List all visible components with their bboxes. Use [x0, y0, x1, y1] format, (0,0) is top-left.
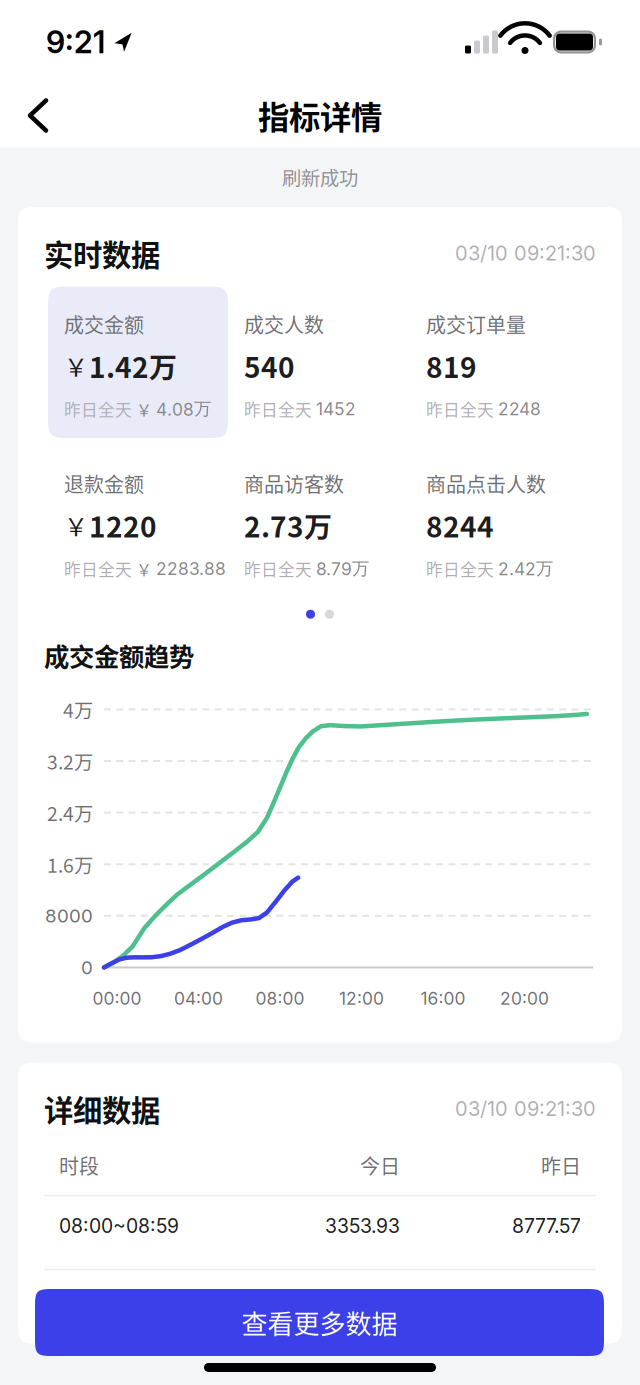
staticText: 2.42万: [498, 558, 553, 580]
staticText: 8.79万: [316, 558, 369, 580]
staticText: 成交金额: [64, 309, 144, 338]
staticText: 2.4万: [47, 799, 93, 827]
staticText: 商品点击人数: [426, 469, 546, 498]
staticText: 00:00: [92, 988, 141, 1009]
staticText: 昨日全天: [64, 397, 132, 421]
staticText: 1.6万: [47, 850, 93, 878]
staticText: 1452: [316, 399, 356, 420]
staticText: 12:00: [339, 988, 384, 1009]
staticText: 3353.93: [325, 1214, 400, 1238]
staticText: 04:00: [174, 988, 223, 1009]
staticText: 08:00: [255, 988, 304, 1009]
staticText: 成交金额趋势: [44, 637, 194, 673]
staticText: 时段: [59, 1151, 99, 1180]
button[interactable]: 查看更多数据: [35, 1289, 604, 1356]
staticText: 700.00: [336, 1298, 400, 1322]
staticText: 3.2万: [47, 747, 93, 775]
staticText: 4.08万: [156, 398, 211, 420]
staticText: ￥: [136, 557, 152, 580]
staticText: 9:21: [46, 23, 105, 60]
staticText: 实时数据: [44, 232, 160, 274]
staticText: 16:00: [420, 988, 465, 1009]
staticText: 1220: [89, 505, 157, 546]
staticText: 成交人数: [244, 309, 324, 338]
staticText: 今日: [360, 1151, 400, 1180]
staticText: 昨日全天: [244, 397, 312, 421]
staticText: 4万: [63, 695, 93, 723]
staticText: 刷新成功: [282, 163, 358, 191]
staticText: 昨日全天: [426, 397, 494, 421]
staticText: 03/10 09:21:30: [455, 1097, 596, 1121]
staticText: 819: [426, 345, 477, 386]
staticText: 20:00: [500, 988, 549, 1009]
staticText: 昨日全天: [64, 557, 132, 581]
staticText: 08:00~08:59: [59, 1214, 179, 1238]
staticText: 8000: [45, 904, 93, 927]
staticText: 成交订单量: [426, 309, 526, 338]
staticText: 商品访客数: [244, 469, 344, 498]
staticText: 03/10 09:21:30: [455, 241, 596, 265]
staticText: ￥: [64, 348, 88, 383]
button[interactable]: Back: [0, 86, 70, 144]
staticText: 8244: [426, 505, 494, 546]
staticText: 昨日: [541, 1151, 581, 1180]
staticText: ￥: [136, 397, 152, 421]
staticText: 查看更多数据: [241, 1304, 397, 1341]
staticText: 2.73万: [244, 505, 332, 546]
staticText: 昨日全天: [426, 557, 494, 581]
staticText: 0: [81, 956, 93, 979]
staticText: 昨日全天: [244, 557, 312, 581]
staticText: ￥: [64, 508, 88, 543]
staticText: 1.42万: [89, 345, 177, 386]
staticText: 指标详情: [258, 93, 382, 138]
staticText: 2248: [498, 399, 541, 420]
staticText: 540: [244, 345, 295, 386]
staticText: 2283.88: [156, 558, 226, 579]
staticText: 退款金额: [64, 469, 144, 498]
staticText: 详细数据: [44, 1087, 160, 1130]
staticText: 8777.57: [512, 1214, 581, 1238]
